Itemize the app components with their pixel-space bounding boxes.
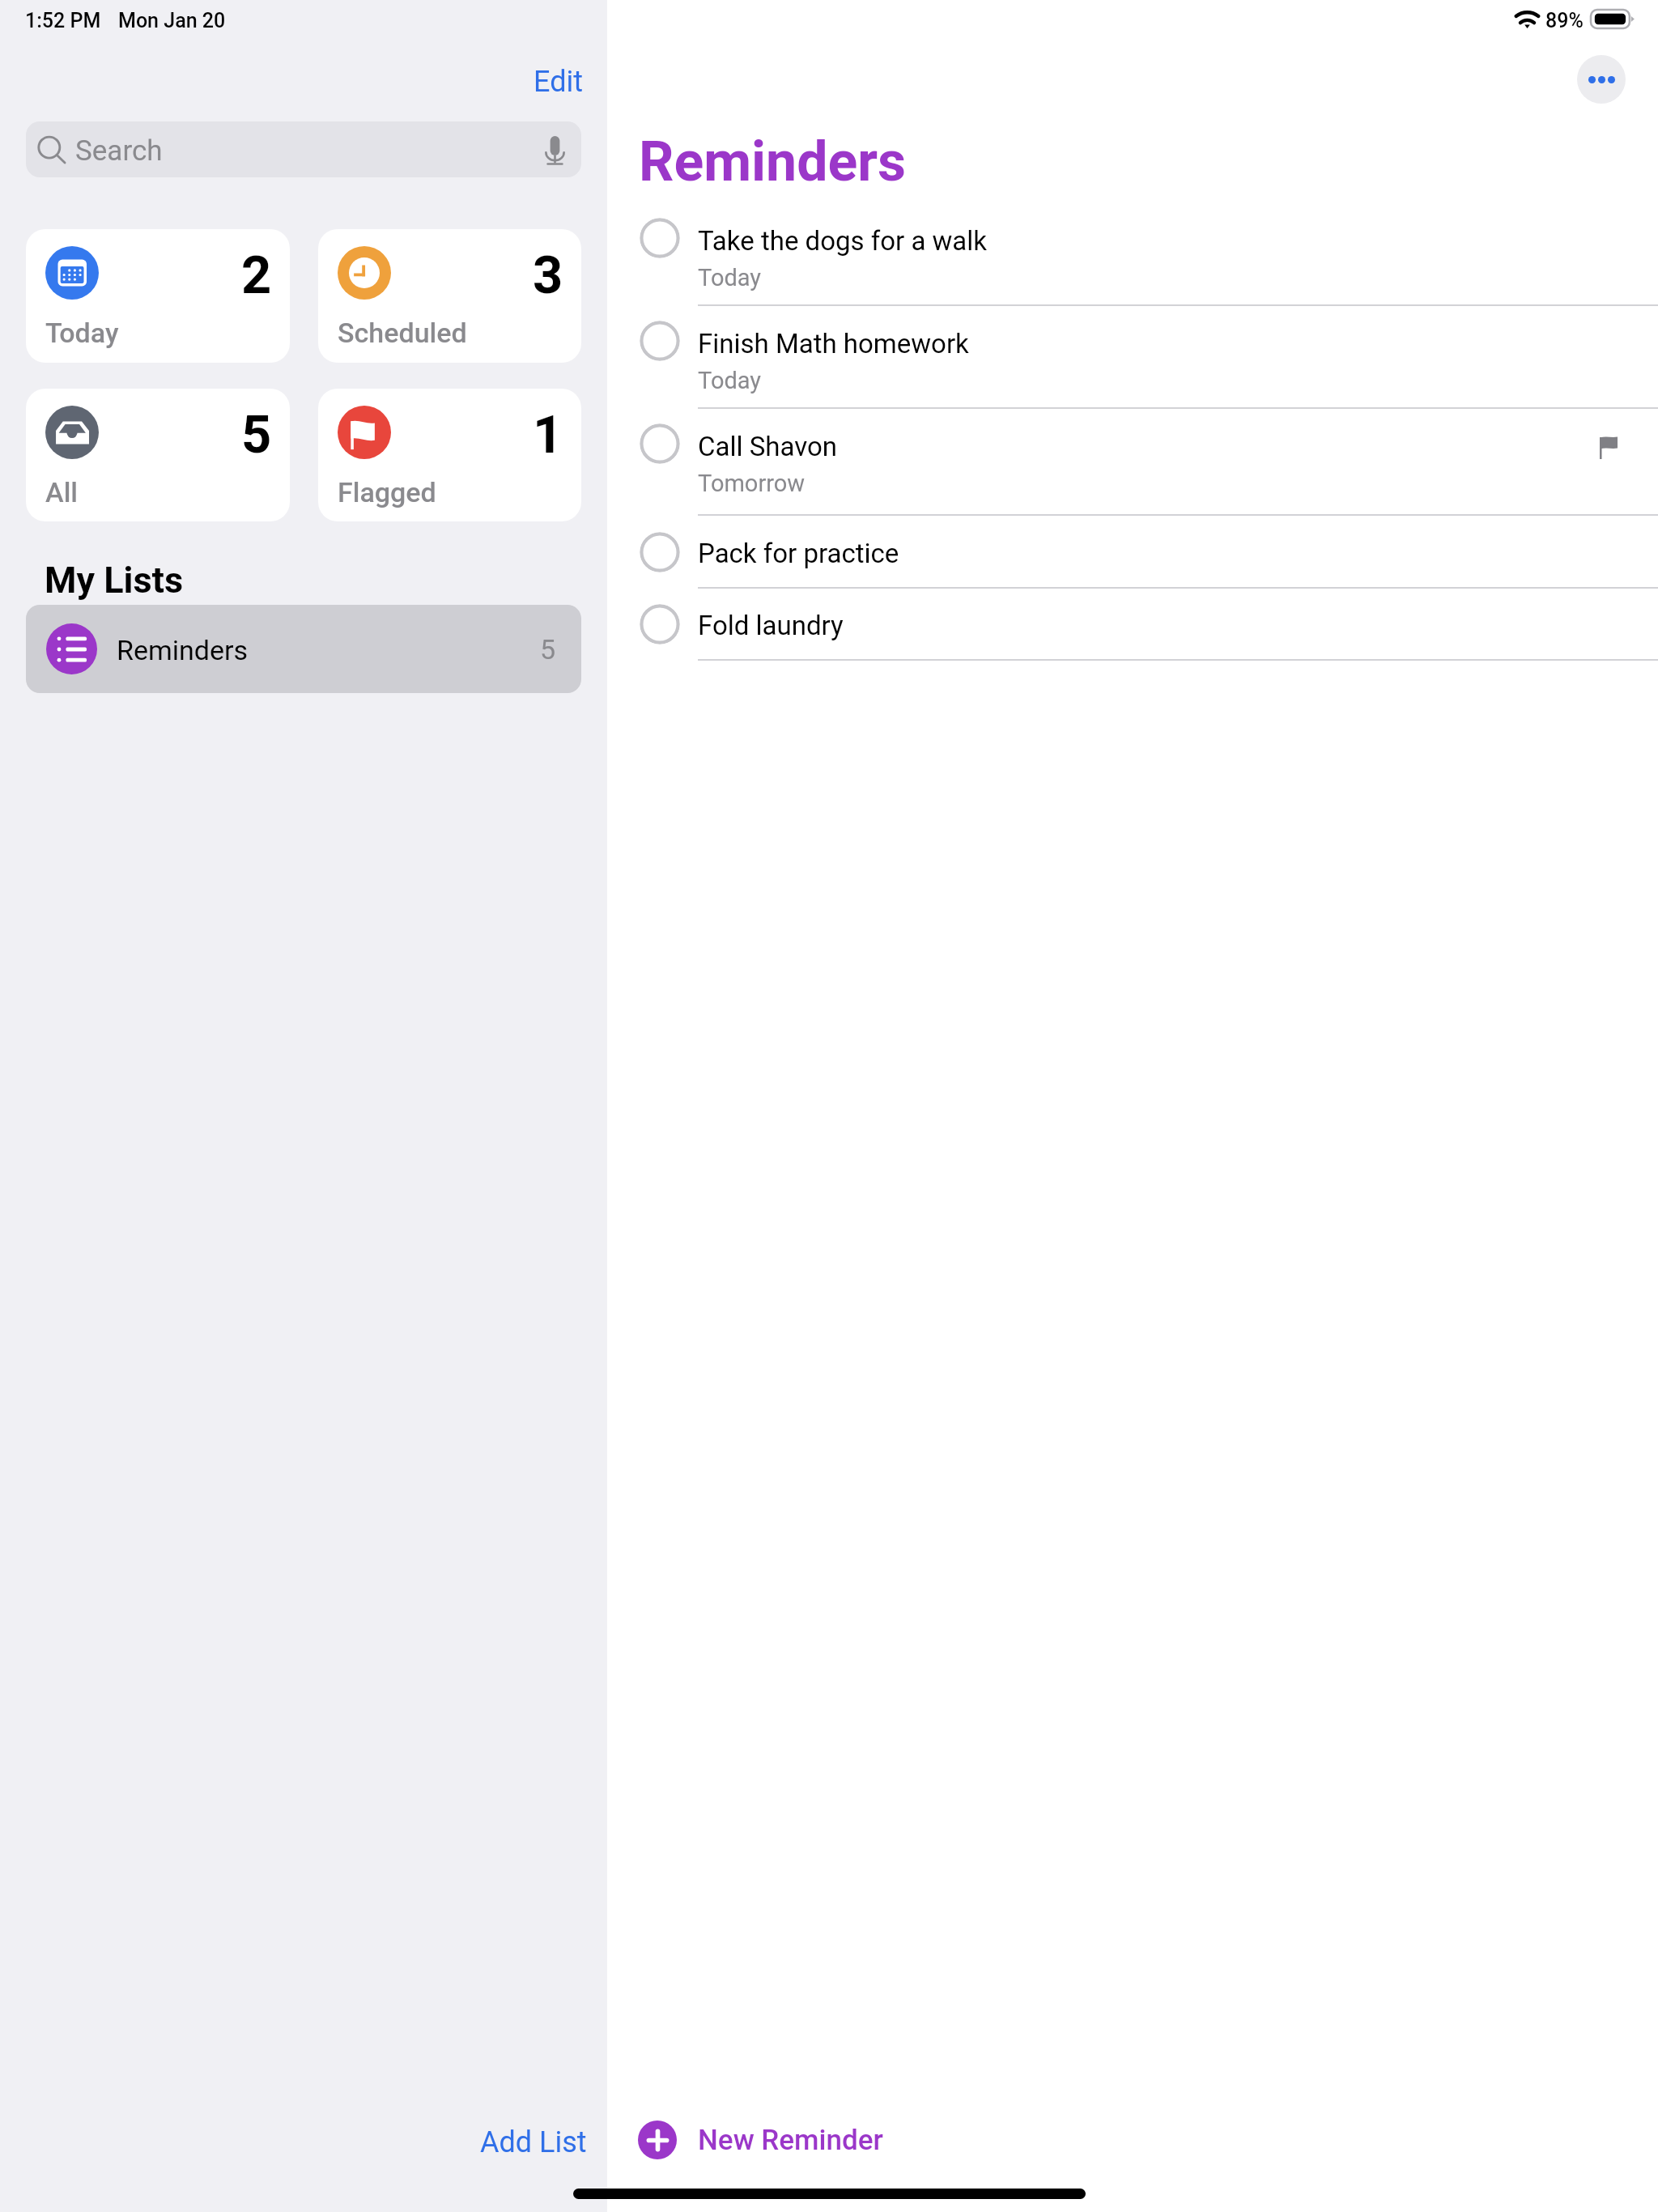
staticText: Flagged [338,476,436,508]
button[interactable]: Add List [470,2116,597,2169]
staticText: All [45,476,79,508]
staticText: Edit [534,65,583,99]
button[interactable]: Search [26,121,581,177]
button[interactable]: New Reminder [630,2108,903,2172]
button[interactable]: 1 [318,389,581,521]
staticText: Reminders [117,634,249,666]
button[interactable]: Mark Call Shavon complete [607,409,1658,516]
button[interactable]: 3 [318,229,581,363]
staticText: New Reminder [698,2124,883,2157]
staticText: Reminders [639,130,907,194]
staticText: My Lists [45,559,184,602]
staticText: 1 [533,404,563,466]
button[interactable]: Mark Pack for practice complete [607,516,1658,589]
staticText: Today [698,264,762,291]
staticText: Fold laundry [698,610,844,641]
button[interactable]: Edit [524,55,593,108]
staticText: Scheduled [338,317,467,349]
button[interactable]: Mark Finish Math homework complete [607,306,1658,409]
staticText: Add List [480,2125,587,2159]
staticText: 89% [1545,9,1584,32]
staticText: 2 [241,245,272,306]
button[interactable]: More options [1577,55,1626,104]
staticText: 3 [533,245,563,306]
staticText: Take the dogs for a walk [698,225,988,257]
button[interactable]: Mark Fold laundry complete [640,604,680,644]
button[interactable]: Mark Finish Math homework complete [640,321,680,361]
button[interactable]: Mark Take the dogs for a walk complete [607,203,1658,306]
staticText: Mon Jan 20 [118,9,226,32]
staticText: Today [698,367,762,394]
button[interactable]: Dictate search [537,127,573,174]
button[interactable]: Mark Fold laundry complete [607,589,1658,661]
staticText: Pack for practice [698,538,899,569]
staticText: Finish Math homework [698,328,969,359]
button[interactable]: Mark Call Shavon complete [640,423,680,464]
staticText: Search [75,134,163,168]
button[interactable]: Mark Pack for practice complete [640,532,680,572]
staticText: Call Shavon [698,431,837,462]
button[interactable]: 5 [26,389,290,521]
staticText: 5 [241,404,272,466]
button[interactable]: Reminders [26,605,581,693]
button[interactable]: 2 [26,229,290,363]
staticText: Today [45,317,119,349]
staticText: 1:52 PM [25,9,101,32]
button[interactable]: Mark Take the dogs for a walk complete [640,218,680,258]
staticText: Tomorrow [698,470,806,497]
staticText: 5 [540,633,556,666]
